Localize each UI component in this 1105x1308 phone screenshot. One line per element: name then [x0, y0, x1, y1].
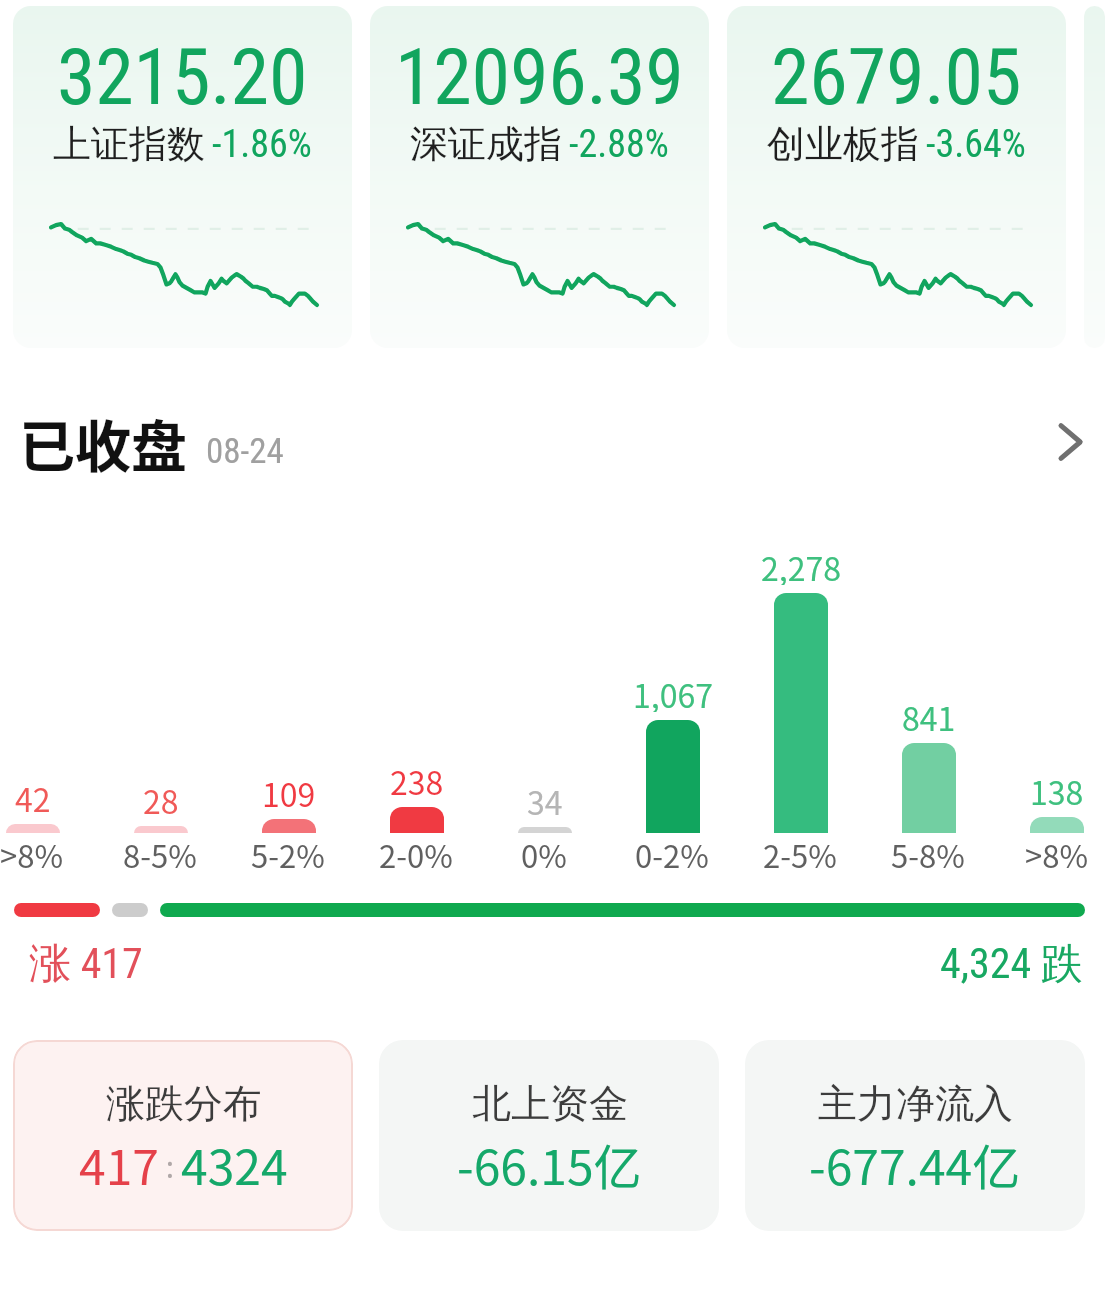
staticText: 3215.20: [57, 32, 308, 123]
staticText: 34: [527, 778, 563, 819]
staticText: >8%: [1025, 832, 1088, 872]
staticText: 2679.05: [771, 32, 1022, 123]
staticText: -2.88%: [569, 122, 669, 167]
staticText: 0-2%: [635, 832, 709, 872]
staticText: 138: [1030, 768, 1084, 809]
button[interactable]: 3215.20: [13, 6, 352, 348]
button[interactable]: 北上资金: [379, 1040, 719, 1231]
staticText: -1.86%: [212, 122, 312, 167]
staticText: 涨 417: [29, 938, 143, 991]
staticText: 上证指数: [53, 120, 205, 168]
button[interactable]: 已收盘: [0, 401, 1105, 483]
button[interactable]: 涨跌分布: [13, 1040, 353, 1231]
other: More details: [1049, 422, 1089, 462]
staticText: 841: [902, 694, 956, 735]
staticText: 4324: [181, 1129, 288, 1199]
staticText: 创业板指: [767, 120, 919, 168]
staticText: 8-5%: [123, 832, 197, 872]
staticText: 2,278: [761, 544, 841, 585]
button[interactable]: 12096.39: [370, 6, 709, 348]
staticText: 4,324 跌: [940, 938, 1083, 991]
staticText: 5-8%: [891, 832, 965, 872]
staticText: 417: [79, 1129, 159, 1199]
staticText: -677.44亿: [809, 1129, 1021, 1199]
staticText: 深证成指: [410, 120, 562, 168]
staticText: >8%: [0, 832, 63, 872]
staticText: 28: [143, 777, 179, 818]
staticText: 1,067: [633, 671, 713, 712]
staticText: 0%: [521, 832, 567, 872]
button[interactable]: 2679.05: [727, 6, 1066, 348]
staticText: 北上资金: [472, 1079, 628, 1128]
staticText: 2-5%: [763, 832, 837, 872]
staticText: 5-2%: [251, 832, 325, 872]
staticText: -66.15亿: [457, 1129, 642, 1199]
button[interactable]: [1084, 6, 1105, 348]
staticText: 42: [15, 775, 51, 816]
staticText: -3.64%: [926, 122, 1026, 167]
staticText: 主力净流入: [818, 1079, 1013, 1128]
button[interactable]: 主力净流入: [745, 1040, 1085, 1231]
staticText: 已收盘: [19, 402, 187, 483]
staticText: 08-24: [206, 431, 284, 472]
staticText: 12096.39: [395, 32, 684, 123]
staticText: 109: [262, 770, 316, 811]
staticText: :: [159, 1143, 181, 1186]
staticText: 238: [390, 758, 444, 799]
staticText: 2-0%: [379, 832, 453, 872]
staticText: 涨跌分布: [106, 1079, 262, 1128]
